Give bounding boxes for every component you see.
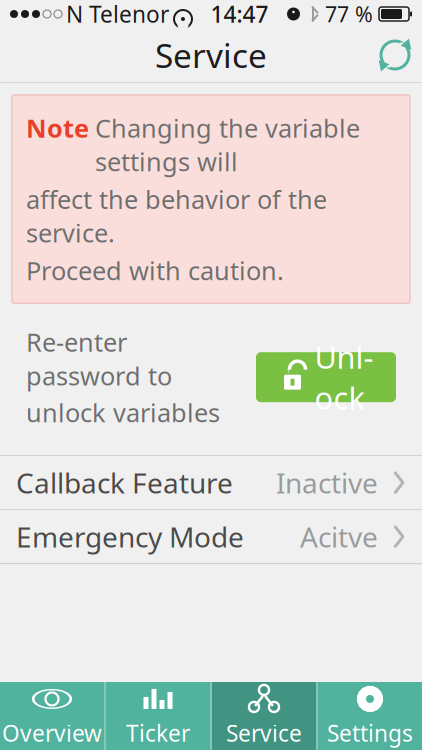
staticText: Acitve [300,518,378,555]
staticText: Overview [2,718,102,748]
staticText: 77 % [325,0,373,28]
button[interactable]: Emergency Mode [0,510,422,563]
button[interactable]: Ticker [106,682,210,750]
staticText: Inactive [276,464,378,501]
staticText: Service [226,718,302,748]
button[interactable]: Unlock [256,352,396,402]
staticText: N Telenor [66,0,169,29]
staticText: Note [26,111,89,145]
staticText: Ticker [126,718,190,748]
staticText: Re-enter password to [26,325,172,392]
staticText: Unlock [314,336,373,418]
staticText: affect the behavior of the service. [26,182,327,250]
staticText: Emergency Mode [16,518,244,555]
button[interactable]: Refresh [368,28,422,82]
staticText: 14:47 [210,0,268,29]
staticText: Settings [327,718,413,748]
staticText: Proceed with caution. [26,254,284,287]
staticText: unlock variables [26,395,220,429]
button[interactable]: Callback Feature [0,456,422,509]
button[interactable]: Overview [0,682,104,750]
staticText: Callback Feature [16,464,233,501]
staticText: Changing the variable settings will [95,111,360,178]
button[interactable]: Settings [318,682,422,750]
button[interactable]: Service [212,682,316,750]
staticText: Service [155,33,267,77]
